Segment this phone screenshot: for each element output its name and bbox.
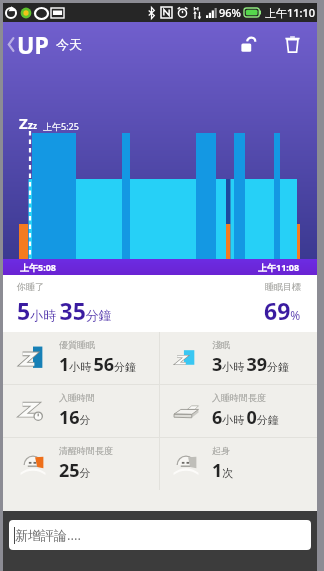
staticText: 25分: [59, 458, 91, 483]
button[interactable]: Unlock: [226, 22, 270, 66]
button[interactable]: 起身: [160, 438, 317, 490]
staticText: 3小時 39分鐘: [212, 352, 289, 377]
staticText: 新增評論....: [15, 526, 81, 544]
button[interactable]: 清醒時間長度: [3, 438, 159, 490]
staticText: 你睡了: [17, 281, 44, 292]
staticText: 上午11:10: [265, 5, 316, 20]
button[interactable]: Delete: [270, 22, 314, 66]
staticText: 96%: [219, 5, 241, 20]
staticText: 今天: [56, 36, 82, 52]
staticText: 上午5:25: [43, 120, 79, 132]
button[interactable]: 優質睡眠: [3, 332, 159, 384]
staticText: Zzz: [19, 113, 38, 133]
staticText: 69%: [264, 295, 301, 326]
staticText: 上午11:08: [258, 261, 300, 273]
staticText: 優質睡眠: [59, 339, 95, 350]
staticText: 1次: [212, 458, 234, 483]
staticText: 1小時 56分鐘: [59, 352, 136, 377]
button[interactable]: 入睡時間長度: [160, 385, 317, 437]
staticText: 起身: [212, 445, 230, 456]
staticText: 入睡時間長度: [212, 392, 266, 403]
staticText: 清醒時間長度: [59, 445, 113, 456]
staticText: 睡眠目標: [265, 281, 301, 292]
staticText: 6小時 0分鐘: [212, 405, 279, 430]
staticText: 上午5:08: [20, 261, 56, 273]
staticText: 入睡時間: [59, 392, 95, 403]
staticText: 5小時 35分鐘: [17, 295, 112, 326]
button[interactable]: 新增評論....: [9, 520, 311, 550]
button[interactable]: 入睡時間: [3, 385, 159, 437]
staticText: 16分: [59, 405, 91, 430]
staticText: UP: [17, 29, 49, 60]
button[interactable]: 淺眠: [160, 332, 317, 384]
staticText: 淺眠: [212, 339, 230, 350]
